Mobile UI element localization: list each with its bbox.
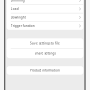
staticText: Product information [30, 68, 60, 72]
button[interactable]: Product information [7, 66, 83, 75]
staticText: Save settings to file [30, 41, 60, 45]
button[interactable]: Share settings [7, 49, 83, 58]
button[interactable]: Downlight [7, 13, 83, 21]
staticText: Load [11, 7, 19, 11]
button[interactable]: Load [7, 5, 83, 13]
staticText: Downlight [11, 15, 26, 19]
staticText: Trigger function [11, 24, 35, 28]
button[interactable]: Trigger function [7, 22, 83, 30]
button[interactable]: Dimming [7, 0, 83, 4]
button[interactable]: Save settings to file [7, 38, 83, 48]
staticText: Dimming [11, 0, 25, 2]
staticText: Share settings [34, 51, 55, 55]
